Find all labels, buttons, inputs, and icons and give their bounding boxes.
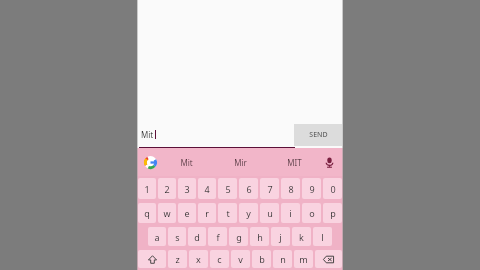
staticText: z — [175, 253, 180, 265]
button[interactable]: SEND — [294, 124, 342, 146]
button[interactable]: 7 — [260, 178, 279, 199]
staticText: 1 — [144, 183, 150, 195]
staticText: b — [259, 253, 265, 265]
button[interactable]: a — [148, 227, 166, 246]
staticText: 2 — [164, 183, 170, 195]
button[interactable]: Voice input — [321, 154, 337, 170]
staticText: Mit — [141, 129, 154, 140]
staticText: w — [163, 207, 171, 219]
button[interactable]: 4 — [198, 178, 216, 199]
button[interactable]: Backspace — [315, 250, 342, 268]
button[interactable]: l — [313, 227, 332, 246]
button[interactable]: h — [250, 227, 269, 246]
staticText: y — [246, 207, 251, 219]
button[interactable]: v — [231, 250, 250, 268]
button[interactable]: 3 — [178, 178, 196, 199]
button[interactable]: w — [158, 203, 176, 223]
button[interactable]: 9 — [302, 178, 321, 199]
staticText: MIT — [287, 157, 302, 168]
button[interactable]: u — [260, 203, 279, 223]
button[interactable]: s — [168, 227, 186, 246]
button[interactable]: e — [178, 203, 196, 223]
button[interactable]: 8 — [281, 178, 300, 199]
staticText: r — [205, 207, 209, 219]
staticText: i — [289, 207, 292, 219]
button[interactable]: d — [188, 227, 206, 246]
button[interactable]: i — [281, 203, 300, 223]
staticText: 6 — [246, 183, 252, 195]
staticText: 7 — [267, 183, 273, 195]
staticText: e — [184, 207, 190, 219]
staticText: u — [267, 207, 273, 219]
button[interactable]: o — [302, 203, 321, 223]
button[interactable]: MIT — [267, 148, 321, 176]
button[interactable]: n — [273, 250, 292, 268]
button[interactable]: 1 — [138, 178, 156, 199]
staticText: t — [226, 207, 230, 219]
button[interactable]: Google — [142, 154, 158, 170]
staticText: j — [279, 231, 282, 243]
staticText: 9 — [309, 183, 315, 195]
staticText: m — [299, 253, 308, 265]
staticText: k — [299, 231, 304, 243]
button[interactable]: c — [210, 250, 229, 268]
button[interactable]: p — [323, 203, 342, 223]
staticText: s — [175, 231, 180, 243]
staticText: h — [257, 231, 263, 243]
button[interactable]: r — [198, 203, 216, 223]
button[interactable]: f — [208, 227, 227, 246]
button[interactable]: 0 — [323, 178, 342, 199]
staticText: 3 — [184, 183, 190, 195]
button[interactable]: b — [252, 250, 271, 268]
button[interactable]: q — [138, 203, 156, 223]
button[interactable]: m — [294, 250, 313, 268]
button[interactable]: Mir — [213, 148, 267, 176]
button[interactable]: g — [229, 227, 248, 246]
staticText: n — [280, 253, 286, 265]
staticText: SEND — [309, 130, 328, 140]
staticText: Mir — [234, 157, 247, 168]
button[interactable]: 5 — [218, 178, 237, 199]
staticText: o — [309, 207, 315, 219]
button[interactable]: t — [218, 203, 237, 223]
staticText: Mit — [180, 157, 193, 168]
button[interactable]: 6 — [239, 178, 258, 199]
staticText: v — [238, 253, 243, 265]
button[interactable]: z — [168, 250, 187, 268]
button[interactable]: x — [189, 250, 208, 268]
button[interactable]: y — [239, 203, 258, 223]
button[interactable]: j — [271, 227, 290, 246]
button[interactable]: k — [292, 227, 311, 246]
staticText: 4 — [204, 183, 210, 195]
staticText: x — [196, 253, 201, 265]
staticText: p — [330, 207, 336, 219]
staticText: q — [144, 207, 150, 219]
staticText: l — [321, 231, 324, 243]
staticText: f — [216, 231, 220, 243]
staticText: g — [236, 231, 242, 243]
button[interactable]: Mit — [159, 148, 213, 176]
staticText: a — [154, 231, 160, 243]
button[interactable]: 2 — [158, 178, 176, 199]
button[interactable]: Mit — [139, 123, 295, 148]
staticText: d — [194, 231, 200, 243]
staticText: 0 — [330, 183, 336, 195]
button[interactable]: Shift — [138, 250, 166, 268]
staticText: 8 — [288, 183, 294, 195]
staticText: 5 — [225, 183, 231, 195]
staticText: c — [217, 253, 222, 265]
